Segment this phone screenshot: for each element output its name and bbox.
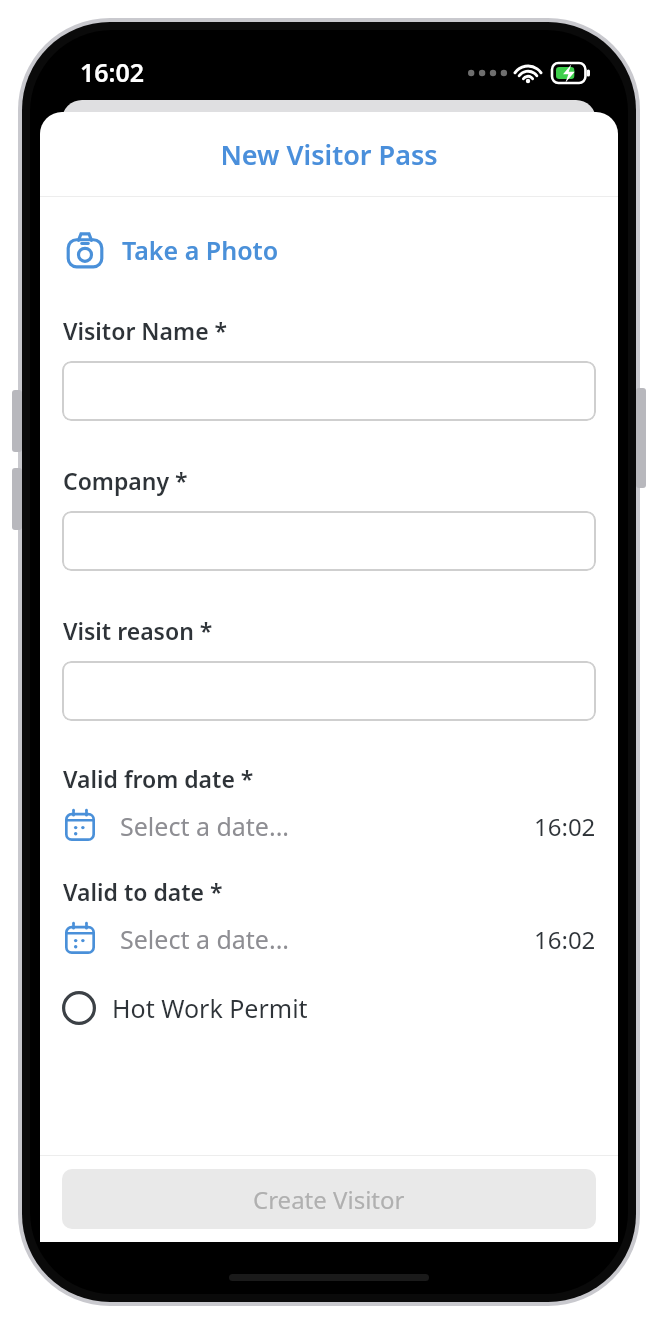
button[interactable] bbox=[62, 511, 596, 571]
button[interactable] bbox=[62, 361, 596, 421]
staticText: Take a Photo bbox=[122, 233, 279, 267]
staticText: New Visitor Pass bbox=[220, 136, 438, 173]
button[interactable]: Select a date bbox=[62, 800, 596, 852]
button[interactable] bbox=[62, 661, 596, 721]
staticText: Hot Work Permit bbox=[112, 991, 308, 1025]
staticText: Valid to date * bbox=[63, 876, 223, 907]
staticText: Create Visitor bbox=[253, 1183, 405, 1216]
other: Select a date bbox=[62, 921, 98, 957]
staticText: Select a date... bbox=[120, 809, 290, 843]
button[interactable]: Hot Work Permit bbox=[62, 983, 596, 1033]
staticText: Company * bbox=[63, 465, 188, 496]
staticText: 16:02 bbox=[534, 810, 596, 843]
button[interactable]: Select a date bbox=[62, 913, 596, 965]
other: Take a Photo bbox=[64, 229, 106, 271]
staticText: Visitor Name * bbox=[63, 315, 228, 346]
staticText: 16:02 bbox=[80, 55, 145, 89]
staticText: 16:02 bbox=[534, 923, 596, 956]
button[interactable]: Take a Photo bbox=[62, 223, 281, 277]
staticText: Select a date... bbox=[120, 922, 290, 956]
staticText: Valid from date * bbox=[63, 763, 254, 794]
button[interactable]: Create Visitor bbox=[62, 1169, 596, 1229]
staticText: Visit reason * bbox=[63, 615, 213, 646]
other: Select a date bbox=[62, 808, 98, 844]
